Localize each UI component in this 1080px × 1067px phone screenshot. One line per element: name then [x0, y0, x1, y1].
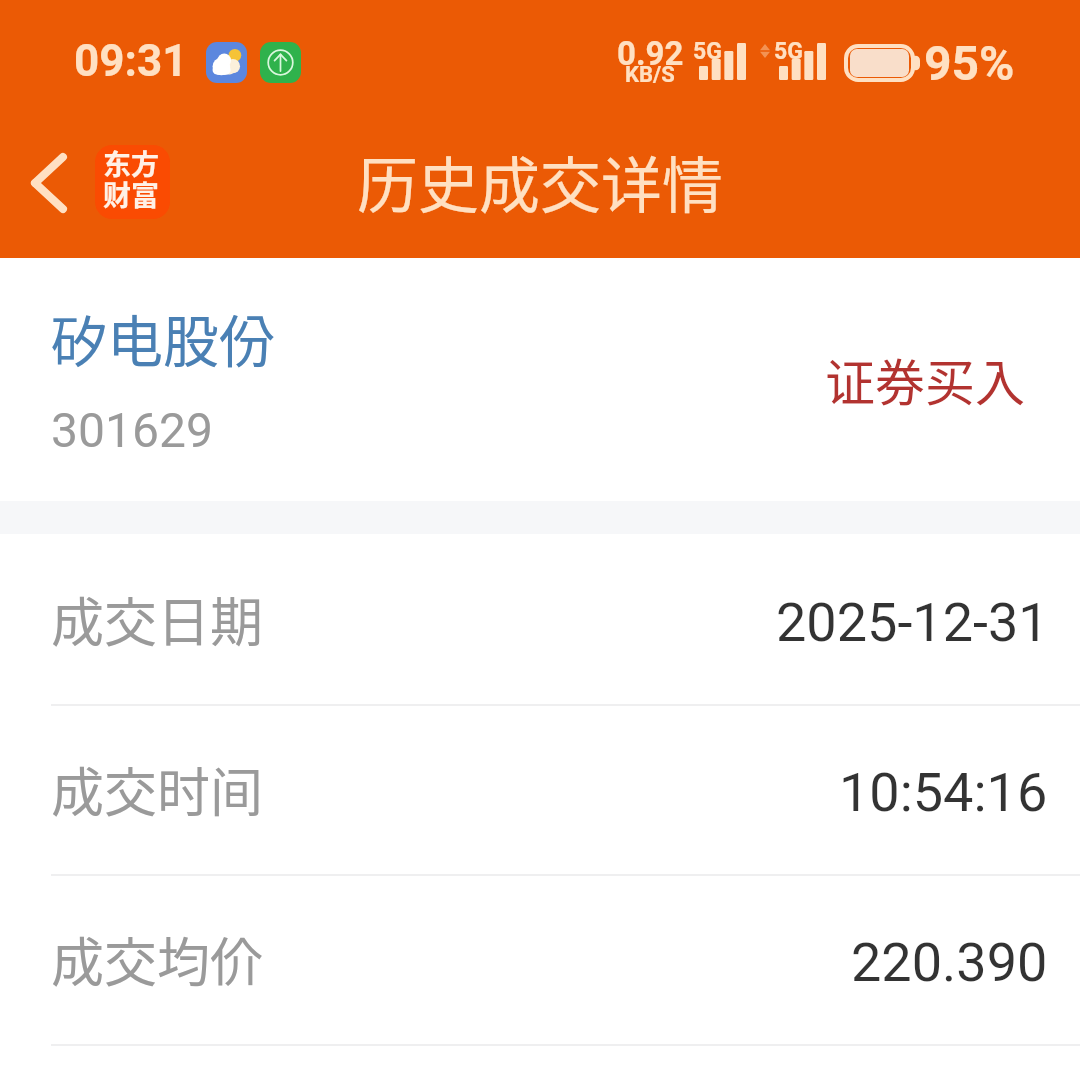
- staticText: 财富: [103, 174, 160, 215]
- staticText: 220.390: [851, 931, 1048, 994]
- staticText: 301629: [51, 402, 213, 458]
- staticText: 5G: [693, 38, 722, 65]
- button[interactable]: 成交均价: [0, 874, 1080, 1044]
- staticText: 成交均价: [51, 921, 263, 998]
- staticText: 成交日期: [51, 581, 263, 658]
- staticText: 5G: [774, 38, 803, 65]
- staticText: 09:31: [74, 35, 188, 87]
- button[interactable]: Back: [7, 141, 91, 225]
- button[interactable]: 成交日期: [0, 534, 1080, 704]
- staticText: 10:54:16: [839, 761, 1048, 824]
- button[interactable]: 矽电股份: [0, 258, 1080, 501]
- staticText: 2025-12-31: [776, 591, 1049, 654]
- staticText: 东方: [103, 145, 160, 184]
- staticText: 95%: [924, 35, 1015, 91]
- staticText: 证券买入: [825, 343, 1025, 415]
- staticText: 0.92: [617, 34, 684, 73]
- staticText: 成交时间: [51, 751, 263, 828]
- staticText: 矽电股份: [51, 297, 275, 378]
- staticText: KB/S: [625, 62, 675, 88]
- staticText: 历史成交详情: [357, 137, 724, 225]
- button[interactable]: 成交时间: [0, 704, 1080, 874]
- button[interactable]: East Money: [95, 145, 170, 219]
